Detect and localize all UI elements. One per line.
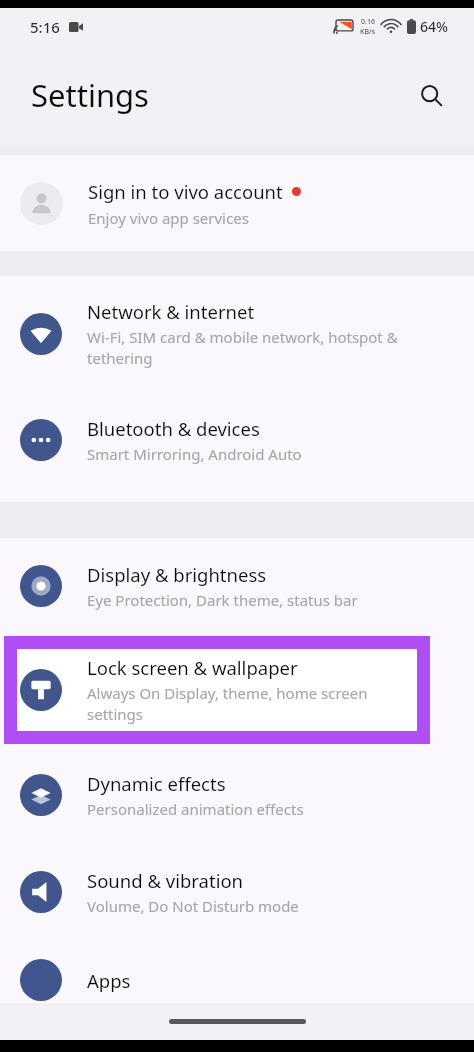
button[interactable]: Display & brightness bbox=[0, 538, 474, 634]
staticText: KB/s bbox=[360, 27, 376, 37]
staticText: Dynamic effects bbox=[87, 771, 226, 796]
staticText: 5:16 bbox=[30, 17, 60, 37]
button[interactable]: Search bbox=[408, 72, 454, 118]
staticText: Bluetooth & devices bbox=[87, 416, 260, 441]
staticText: Enjoy vivo app services bbox=[88, 208, 249, 228]
button[interactable]: Sound & vibration bbox=[0, 843, 474, 940]
staticText: Lock screen & wallpaper bbox=[87, 655, 298, 680]
staticText: Eye Protection, Dark theme, status bar bbox=[87, 590, 358, 610]
button[interactable]: Lock screen & wallpaper bbox=[20, 634, 474, 746]
staticText: Settings bbox=[31, 74, 149, 116]
staticText: 0.16 bbox=[361, 17, 375, 27]
staticText: Always On Display, theme, home screen se… bbox=[87, 683, 418, 725]
staticText: Wi-Fi, SIM card & mobile network, hotspo… bbox=[87, 327, 436, 369]
staticText: Network & internet bbox=[87, 299, 255, 324]
staticText: Apps bbox=[87, 968, 131, 993]
staticText: Personalized animation effects bbox=[87, 799, 304, 819]
staticText: 64% bbox=[420, 17, 448, 36]
staticText: Smart Mirroring, Android Auto bbox=[87, 444, 302, 464]
staticText: Sound & vibration bbox=[87, 868, 244, 893]
button[interactable]: Dynamic effects bbox=[0, 746, 474, 843]
button[interactable]: Apps bbox=[0, 940, 474, 1020]
staticText: Sign in to vivo account bbox=[88, 179, 283, 204]
button[interactable]: Network & internet bbox=[0, 276, 474, 392]
button[interactable]: Bluetooth & devices bbox=[0, 392, 474, 488]
staticText: Volume, Do Not Disturb mode bbox=[87, 896, 299, 916]
staticText: Display & brightness bbox=[87, 562, 267, 587]
button[interactable]: Sign in to vivo account bbox=[0, 155, 474, 251]
